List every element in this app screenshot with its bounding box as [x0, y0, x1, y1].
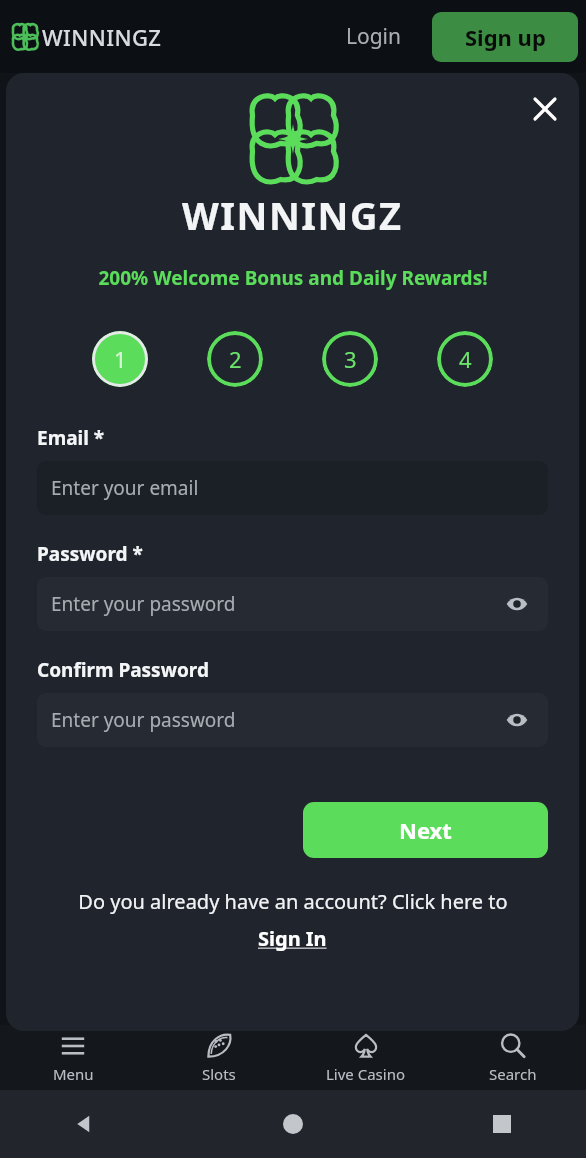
button[interactable]: Show password — [500, 703, 534, 737]
button[interactable]: Enter your email — [37, 461, 548, 515]
staticText: Enter your email — [51, 475, 199, 501]
staticText: 4 — [459, 344, 472, 374]
button[interactable]: Login — [332, 14, 416, 59]
button[interactable]: Recent apps — [478, 1100, 526, 1148]
button[interactable]: Next — [303, 802, 548, 858]
button[interactable]: Home — [269, 1100, 317, 1148]
staticText: Password * — [37, 541, 143, 567]
staticText: WINNINGZ — [182, 189, 403, 241]
button[interactable]: 3 — [322, 331, 378, 387]
staticText: 1 — [114, 344, 127, 374]
staticText: WINNINGZ — [42, 22, 162, 52]
button[interactable]: Show password — [500, 587, 534, 621]
staticText: Enter your password — [51, 707, 236, 733]
staticText: Sign In — [258, 925, 327, 952]
staticText: Search — [489, 1064, 537, 1084]
button[interactable]: WINNINGZ — [12, 22, 162, 52]
button[interactable]: Search — [439, 1025, 586, 1090]
staticText: 3 — [344, 344, 357, 374]
staticText: Live Casino — [326, 1064, 406, 1084]
button[interactable]: 2 — [207, 331, 263, 387]
button[interactable]: Menu — [0, 1025, 146, 1090]
staticText: Confirm Password — [37, 657, 209, 683]
button[interactable]: Live Casino — [292, 1025, 439, 1090]
button[interactable]: Sign In — [252, 923, 333, 954]
staticText: Sign up — [465, 22, 546, 52]
staticText: Email * — [37, 425, 105, 451]
staticText: Enter your password — [51, 591, 236, 617]
button[interactable]: Sign up — [432, 12, 578, 62]
staticText: 2 — [229, 344, 242, 374]
button[interactable]: Slots — [146, 1025, 292, 1090]
button[interactable]: Enter your password — [37, 577, 548, 631]
staticText: Do you already have an account? Click he… — [78, 888, 508, 915]
staticText: Menu — [53, 1064, 94, 1084]
button[interactable]: Enter your password — [37, 693, 548, 747]
button[interactable]: 4 — [437, 331, 493, 387]
button[interactable]: 1 — [92, 331, 148, 387]
button[interactable]: Back — [60, 1100, 108, 1148]
staticText: 200% Welcome Bonus and Daily Rewards! — [98, 265, 488, 291]
button[interactable]: Close — [523, 87, 567, 131]
staticText: Slots — [202, 1064, 236, 1084]
staticText: Next — [399, 815, 452, 845]
staticText: Login — [346, 22, 402, 51]
